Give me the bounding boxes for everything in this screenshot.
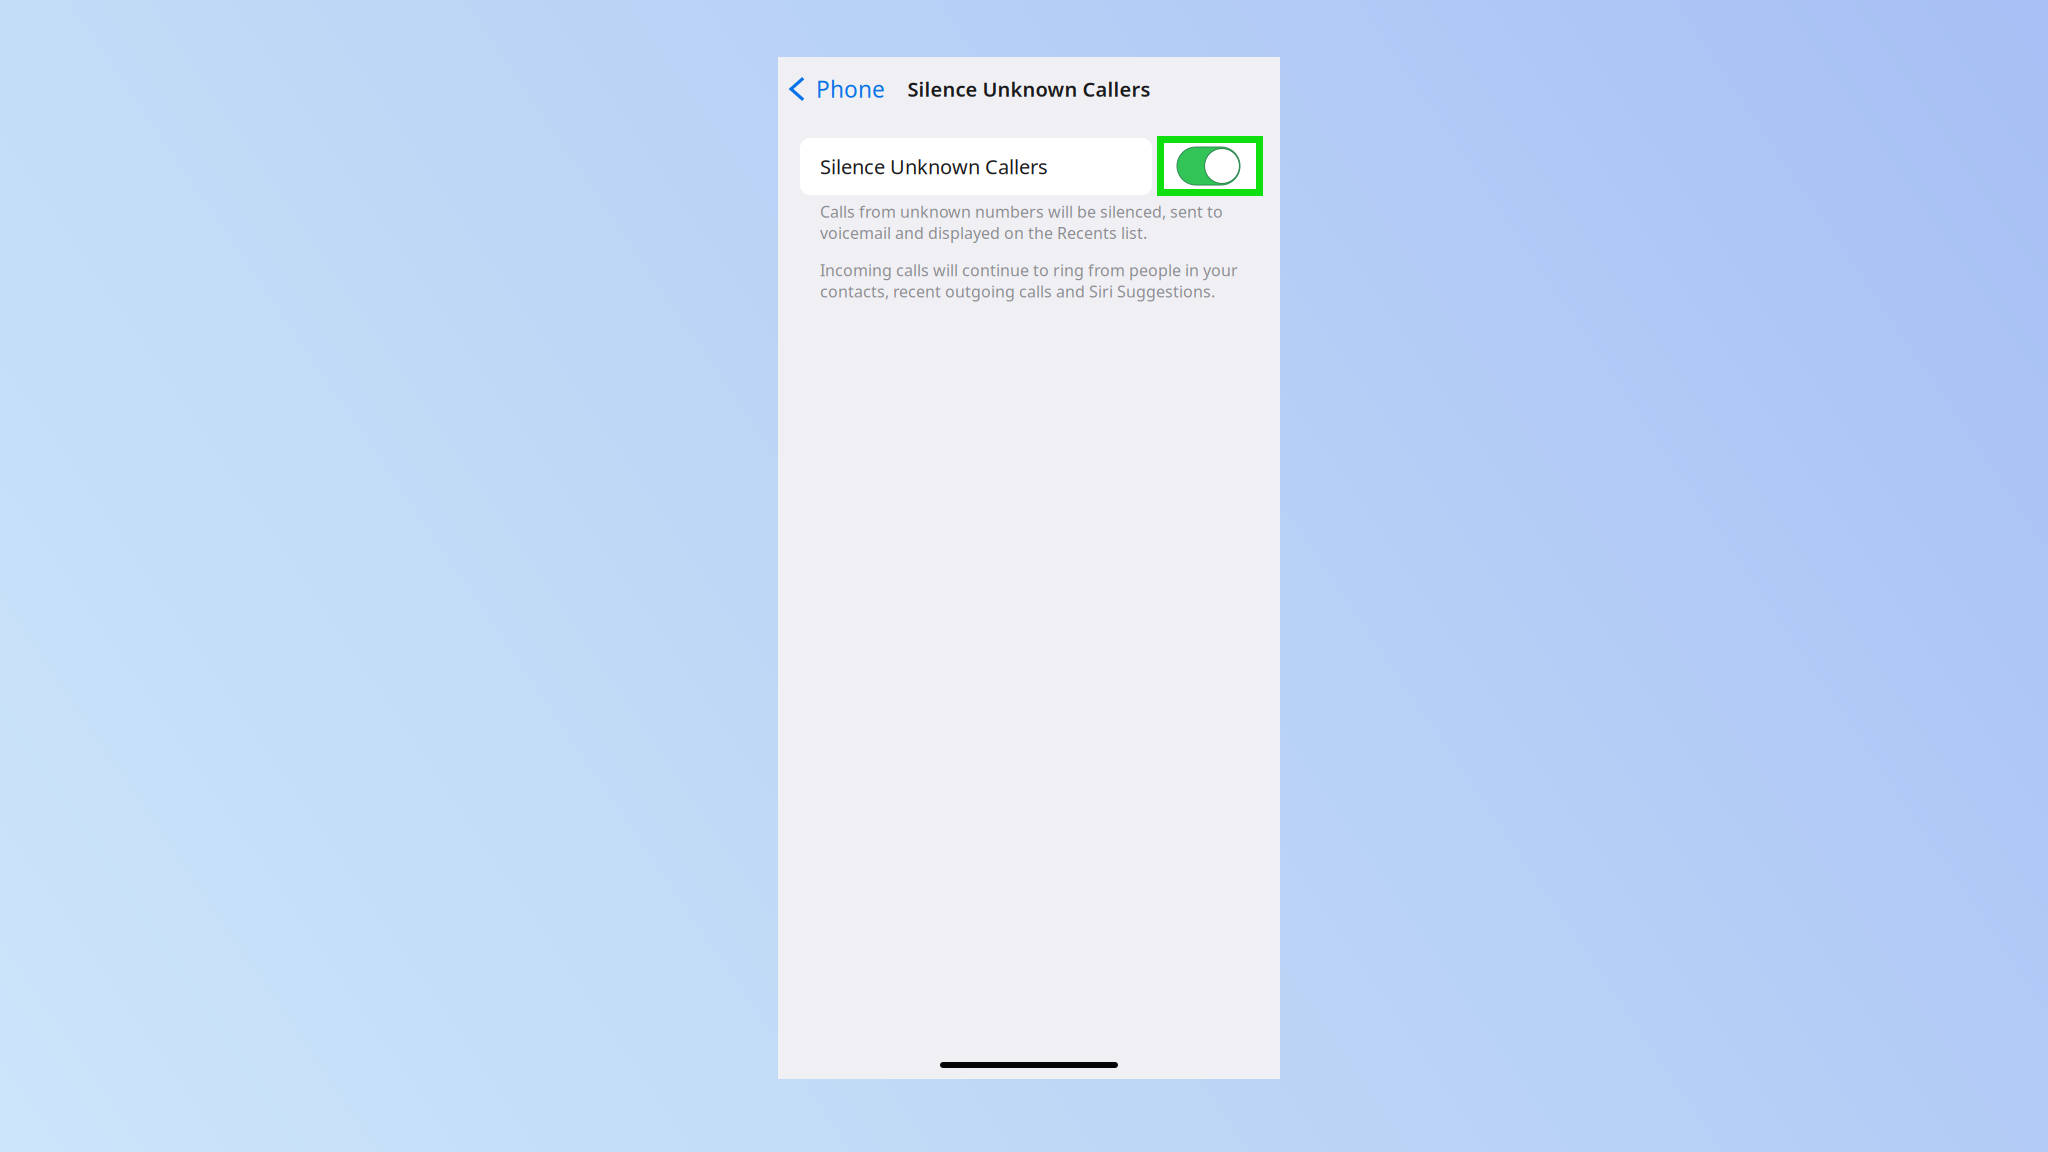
staticText: Calls from unknown numbers will be silen… xyxy=(820,201,1223,243)
button[interactable]: Silence Unknown Callers xyxy=(800,138,1152,195)
staticText: Silence Unknown Callers xyxy=(820,153,1048,180)
staticText: Phone xyxy=(816,74,885,104)
button[interactable]: Silence Unknown Callers, on xyxy=(1157,136,1263,196)
staticText: Silence Unknown Callers xyxy=(907,76,1150,102)
staticText: Incoming calls will continue to ring fro… xyxy=(820,259,1238,302)
button[interactable]: Phone xyxy=(778,72,895,106)
